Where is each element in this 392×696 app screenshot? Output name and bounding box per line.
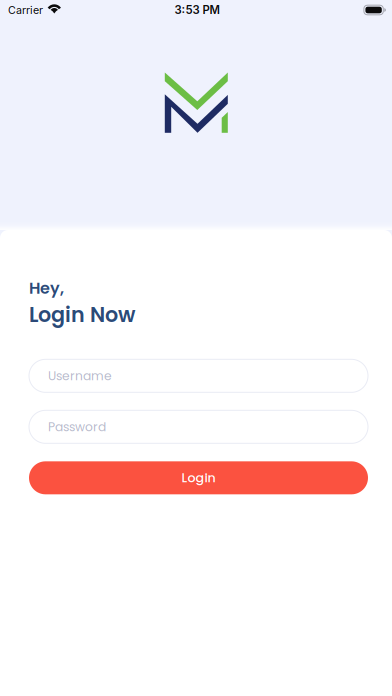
staticText: Carrier [8,3,43,16]
staticText: Username [48,367,112,384]
staticText: 3:53 PM [174,3,219,17]
button[interactable]: Login [29,461,368,494]
staticText: Login [181,469,215,487]
staticText: Password [48,418,106,435]
button[interactable]: Username [29,359,368,392]
staticText: Login Now [29,300,135,329]
button[interactable]: Password [29,410,368,443]
staticText: Hey, [29,277,64,299]
